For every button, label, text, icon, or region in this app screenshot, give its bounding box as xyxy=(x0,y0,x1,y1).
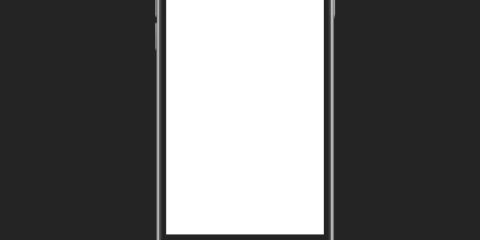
button[interactable]: Volume down xyxy=(154,23,159,49)
button[interactable]: Volume up xyxy=(154,0,159,18)
button[interactable]: Phone display xyxy=(166,0,324,234)
button[interactable]: Power xyxy=(331,0,336,17)
